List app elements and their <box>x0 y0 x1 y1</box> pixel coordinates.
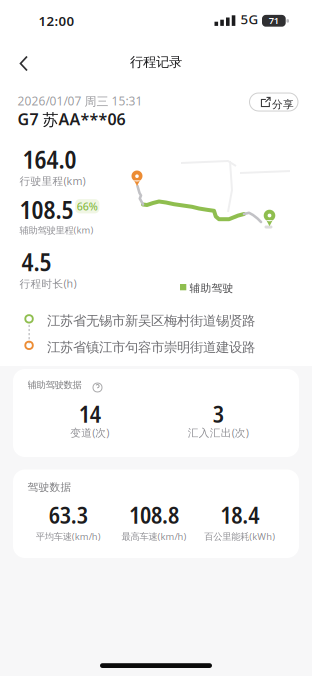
staticText: 平均车速(km/h) <box>36 530 101 542</box>
staticText: 驾驶数据 <box>27 481 71 494</box>
staticText: 江苏省镇江市句容市崇明街道建设路 <box>47 339 255 355</box>
staticText: 汇入汇出(次) <box>188 425 249 440</box>
staticText: 2026/01/07 周三 15:31 <box>17 93 142 109</box>
staticText: 行程记录 <box>130 54 182 70</box>
button[interactable]: 分享 <box>249 93 298 111</box>
staticText: 4.5 <box>21 245 51 278</box>
staticText: 辅助驾驶 <box>189 282 233 295</box>
staticText: 66% <box>77 199 98 213</box>
staticText: 辅助驾驶里程(km) <box>19 224 93 236</box>
staticText: G7 苏AA***06 <box>17 108 125 130</box>
staticText: 108.8 <box>129 499 179 531</box>
staticText: 变道(次) <box>70 425 109 440</box>
staticText: 108.5 <box>19 193 73 226</box>
staticText: 164.0 <box>22 142 76 176</box>
staticText: 18.4 <box>220 499 259 531</box>
staticText: 行程时长(h) <box>19 276 76 291</box>
staticText: 最高车速(km/h) <box>122 530 187 542</box>
staticText: 63.3 <box>49 499 88 531</box>
staticText: 百公里能耗(kWh) <box>204 530 275 542</box>
staticText: 行驶里程(km) <box>19 174 85 188</box>
staticText: 分享 <box>272 98 294 111</box>
staticText: 71 <box>269 14 279 27</box>
staticText: 辅助驾驶数据 <box>27 379 81 391</box>
button[interactable]: Back <box>10 46 37 80</box>
button[interactable]: About assisted driving data <box>93 383 102 392</box>
staticText: 5G <box>240 10 258 28</box>
staticText: 江苏省无锡市新吴区梅村街道锡贤路 <box>47 313 255 329</box>
staticText: 14 <box>79 398 101 430</box>
staticText: 12:00 <box>38 12 74 30</box>
staticText: 3 <box>213 398 224 430</box>
